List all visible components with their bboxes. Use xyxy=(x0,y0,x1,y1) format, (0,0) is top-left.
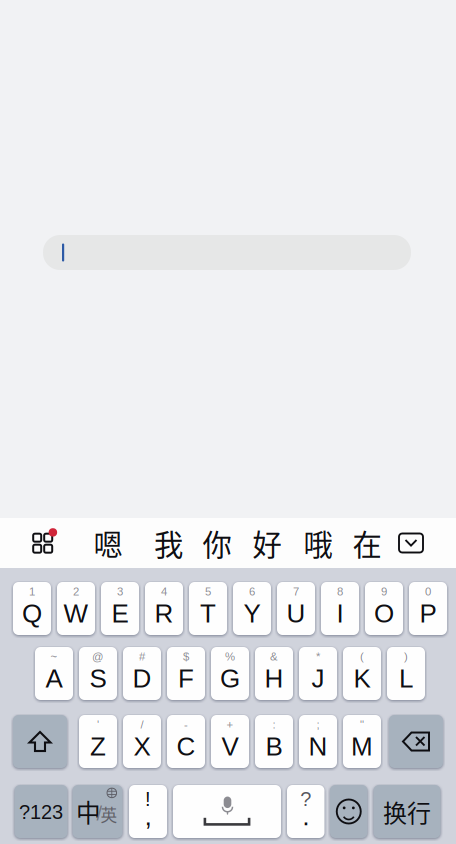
staticText: ~ xyxy=(50,650,57,663)
staticText: % xyxy=(225,650,235,663)
staticText: / xyxy=(140,718,143,731)
staticText: 5 xyxy=(205,585,211,598)
staticText: Q xyxy=(22,599,42,628)
button[interactable]: Emoji xyxy=(330,785,367,838)
staticText: 英 xyxy=(100,802,117,826)
staticText: 嗯 xyxy=(93,522,122,564)
button[interactable]: : xyxy=(255,715,293,768)
staticText: 你 xyxy=(202,522,231,564)
button[interactable]: 哦 xyxy=(295,518,341,568)
button[interactable]: Return xyxy=(373,785,440,838)
staticText: E xyxy=(111,599,128,628)
button[interactable]: 6 xyxy=(233,582,271,635)
button[interactable]: Numbers and symbols xyxy=(14,785,67,838)
button[interactable]: * xyxy=(299,647,337,700)
staticText: * xyxy=(316,650,320,663)
staticText: 好 xyxy=(252,522,281,564)
button[interactable]: ! xyxy=(129,785,167,838)
staticText: I xyxy=(336,599,343,628)
staticText: G xyxy=(220,664,240,693)
staticText: O xyxy=(374,599,394,628)
button[interactable]: ~ xyxy=(35,647,73,700)
staticText: A xyxy=(45,664,62,693)
staticText: 中 xyxy=(76,794,101,829)
staticText: 我 xyxy=(154,522,183,564)
button[interactable]: @ xyxy=(79,647,117,700)
button[interactable]: 你 xyxy=(194,518,240,568)
button[interactable]: 好 xyxy=(244,518,290,568)
button[interactable]: Space xyxy=(173,785,281,838)
button[interactable]: 0 xyxy=(409,582,447,635)
staticText: M xyxy=(351,732,373,761)
button[interactable]: & xyxy=(255,647,293,700)
button[interactable]: 4 xyxy=(145,582,183,635)
staticText: - xyxy=(184,718,188,731)
staticText: R xyxy=(154,599,173,628)
staticText: C xyxy=(176,732,195,761)
staticText: 8 xyxy=(337,585,343,598)
staticText: T xyxy=(200,599,216,628)
button[interactable]: % xyxy=(211,647,249,700)
staticText: S xyxy=(89,664,106,693)
button[interactable]: 嗯 xyxy=(85,518,131,568)
button[interactable]: 在 xyxy=(344,518,390,568)
button[interactable]: Delete xyxy=(389,715,443,768)
staticText: ) xyxy=(404,650,408,663)
button[interactable]: Hide keyboard xyxy=(393,518,429,568)
staticText: @ xyxy=(92,650,104,663)
staticText: $ xyxy=(183,650,189,663)
staticText: ' xyxy=(97,718,99,731)
staticText: , xyxy=(144,801,151,831)
staticText: V xyxy=(221,732,238,761)
button[interactable]: Shift xyxy=(13,715,67,768)
button[interactable]: 5 xyxy=(189,582,227,635)
button[interactable]: + xyxy=(211,715,249,768)
staticText: 哦 xyxy=(303,522,332,564)
button[interactable]: Switch to English xyxy=(72,785,122,838)
button[interactable]: Input panel xyxy=(23,518,63,568)
button[interactable]: ' xyxy=(79,715,117,768)
staticText: X xyxy=(133,732,150,761)
staticText: J xyxy=(311,664,324,693)
staticText: Y xyxy=(243,599,260,628)
button[interactable]: 7 xyxy=(277,582,315,635)
staticText: 在 xyxy=(352,522,381,564)
staticText: 换行 xyxy=(383,794,431,829)
staticText: + xyxy=(226,718,233,731)
staticText: U xyxy=(286,599,305,628)
staticText: ( xyxy=(360,650,364,663)
staticText: 1 xyxy=(29,585,35,598)
button[interactable]: 1 xyxy=(13,582,51,635)
staticText: ; xyxy=(316,718,319,731)
button[interactable]: 9 xyxy=(365,582,403,635)
button[interactable]: ) xyxy=(387,647,425,700)
staticText: W xyxy=(63,599,88,628)
staticText: ! xyxy=(145,788,151,810)
button[interactable]: # xyxy=(123,647,161,700)
staticText: N xyxy=(308,732,327,761)
staticText: 4 xyxy=(161,585,167,598)
staticText: D xyxy=(132,664,151,693)
button[interactable]: 2 xyxy=(57,582,95,635)
staticText: # xyxy=(139,650,145,663)
button[interactable]: 我 xyxy=(145,518,191,568)
staticText: 2 xyxy=(73,585,79,598)
staticText: : xyxy=(272,718,275,731)
staticText: B xyxy=(265,732,282,761)
button[interactable]: " xyxy=(343,715,381,768)
staticText: 6 xyxy=(249,585,255,598)
staticText: " xyxy=(360,718,364,731)
button[interactable]: ? xyxy=(287,785,324,838)
button[interactable]: ( xyxy=(343,647,381,700)
staticText: ?123 xyxy=(19,801,63,823)
button[interactable]: 3 xyxy=(101,582,139,635)
button[interactable]: ; xyxy=(299,715,337,768)
button[interactable]: - xyxy=(167,715,205,768)
staticText: 0 xyxy=(425,585,431,598)
staticText: P xyxy=(419,599,436,628)
staticText: L xyxy=(399,664,413,693)
button[interactable]: $ xyxy=(167,647,205,700)
button[interactable]: 8 xyxy=(321,582,359,635)
button[interactable]: / xyxy=(123,715,161,768)
staticText: K xyxy=(353,664,370,693)
